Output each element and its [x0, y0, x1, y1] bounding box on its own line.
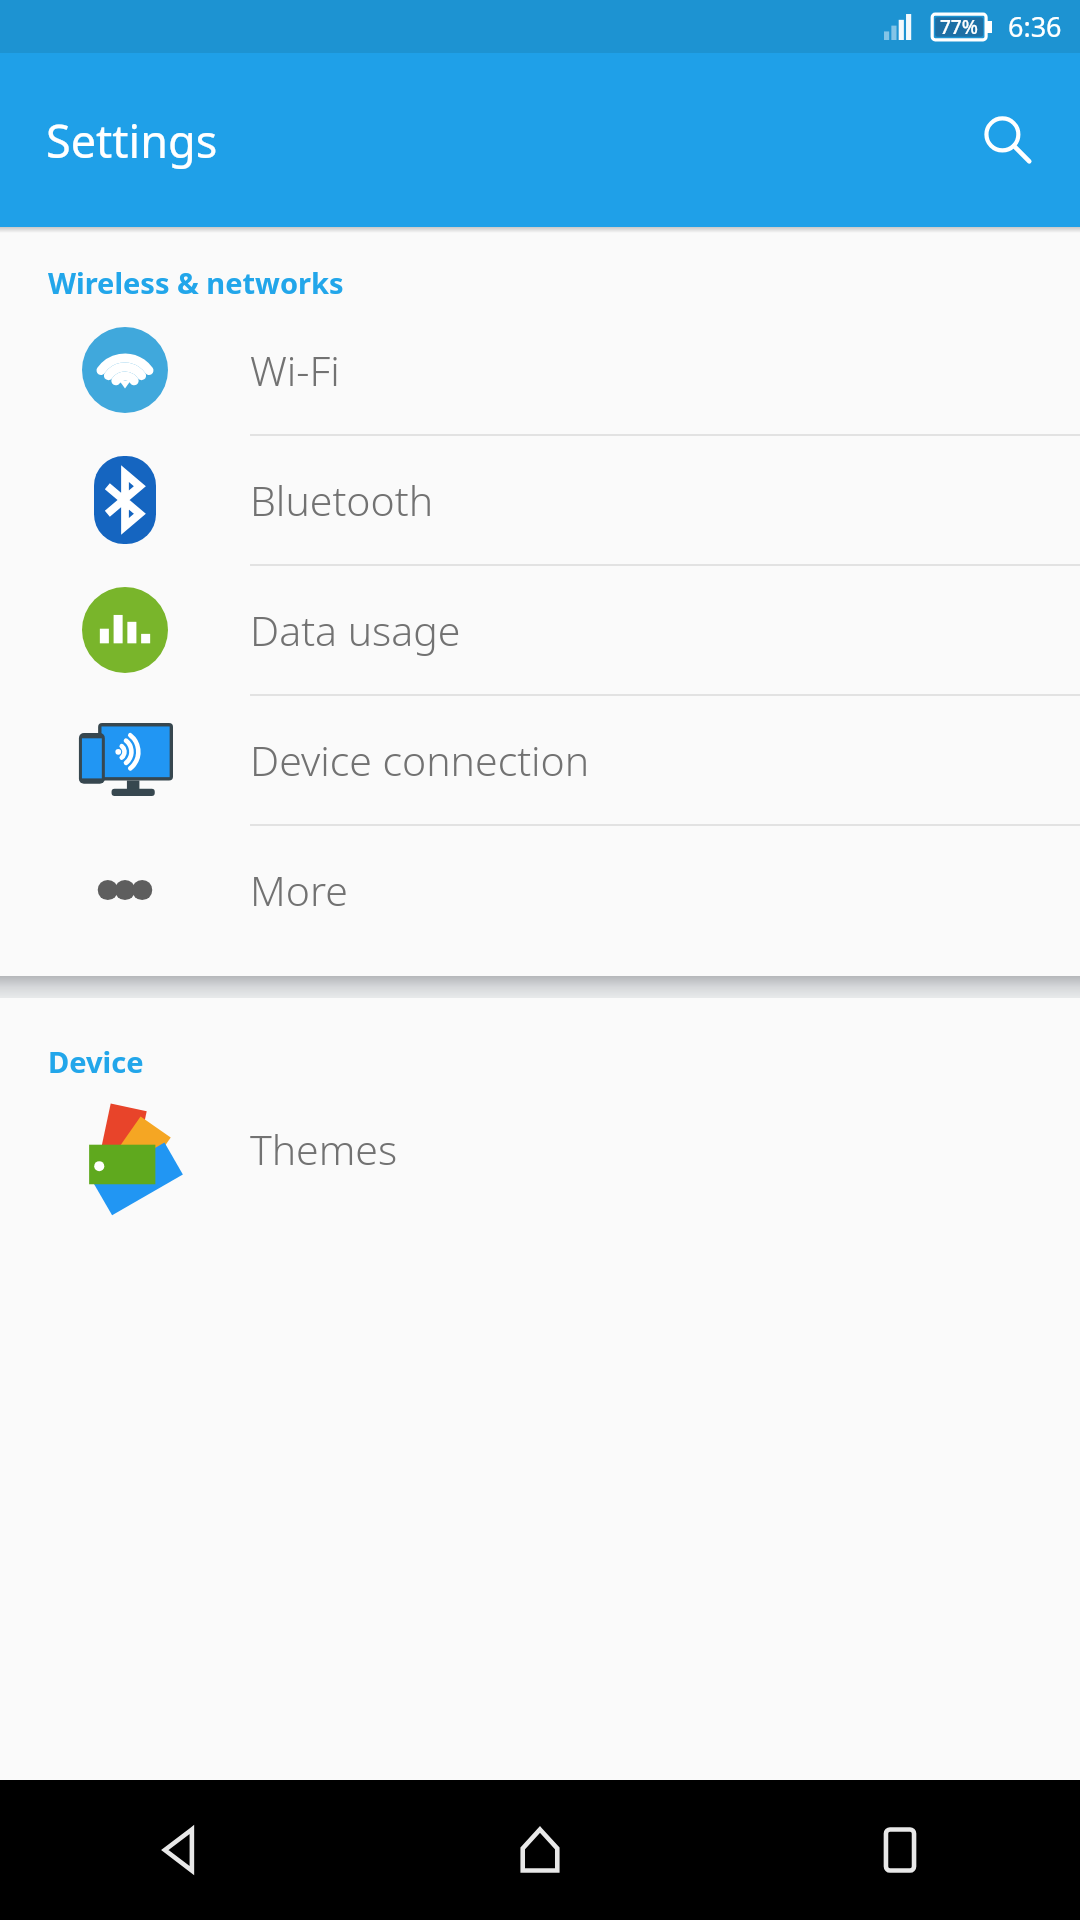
staticText: Device [48, 1042, 144, 1081]
button[interactable]: Recents [720, 1780, 1080, 1920]
staticText: Device connection [250, 732, 590, 788]
staticText: Data usage [250, 602, 461, 658]
staticText: 6:36 [1008, 8, 1062, 45]
staticText: Themes [250, 1121, 398, 1177]
button[interactable]: Data usage [0, 566, 1080, 696]
button[interactable]: Bluetooth [0, 436, 1080, 566]
staticText: Settings [46, 110, 218, 171]
staticText: Bluetooth [250, 472, 434, 528]
button[interactable]: Home [360, 1780, 720, 1920]
staticText: More [250, 862, 348, 918]
button[interactable]: More [0, 826, 1080, 954]
button[interactable]: Wi-Fi [0, 306, 1080, 436]
button[interactable]: Themes [0, 1085, 1080, 1213]
staticText: Wi-Fi [250, 342, 340, 398]
button[interactable]: Device connection [0, 696, 1080, 826]
button[interactable]: Back [0, 1780, 360, 1920]
staticText: 77% [940, 14, 978, 40]
staticText: Wireless & networks [48, 263, 344, 302]
button[interactable]: Search [960, 92, 1056, 188]
